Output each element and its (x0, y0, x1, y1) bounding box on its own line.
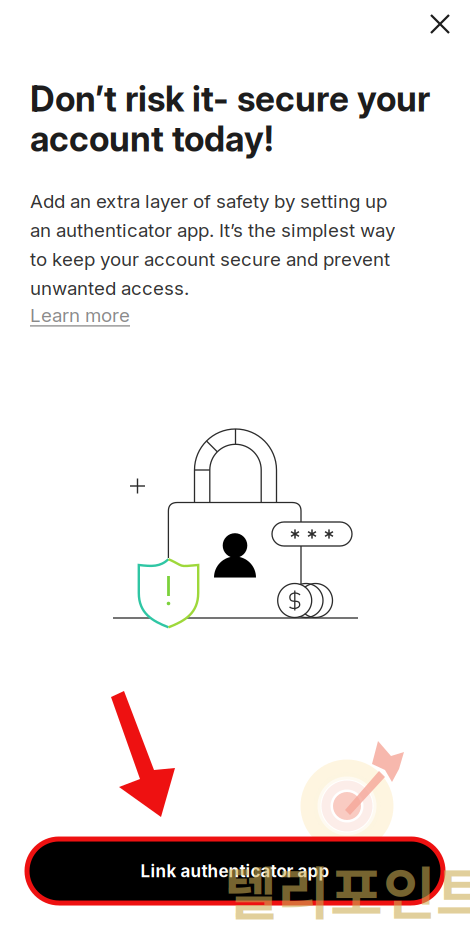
staticText: 텔리포인트 (224, 848, 470, 931)
staticText: Learn more (30, 304, 130, 327)
staticText: Don’t risk it- secure your (30, 78, 430, 120)
staticText: unwanted access. (30, 277, 189, 300)
staticText: an authenticator app. It’s the simplest … (30, 219, 395, 242)
button[interactable]: Link authenticator app (27, 839, 443, 903)
staticText: Add an extra layer of safety by setting … (30, 190, 387, 213)
staticText: to keep your account secure and prevent (30, 248, 390, 271)
button[interactable]: Learn more (30, 304, 130, 327)
button[interactable]: Close (424, 8, 456, 40)
staticText: Link authenticator app (140, 861, 329, 881)
staticText: account today! (30, 118, 274, 160)
